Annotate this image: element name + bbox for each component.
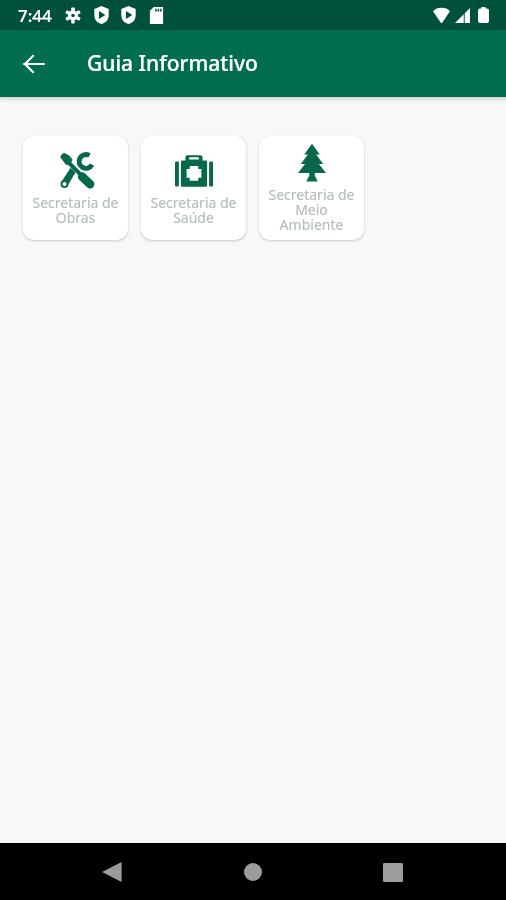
staticText: Secretaria de Meio Ambiente: [268, 185, 355, 234]
button[interactable]: Secretaria de Obras: [23, 136, 128, 240]
button[interactable]: Back: [88, 848, 136, 896]
button[interactable]: Home: [229, 848, 277, 896]
button[interactable]: Recents: [369, 848, 417, 896]
staticText: Secretaria de Saúde: [150, 193, 237, 227]
button[interactable]: Secretaria de Meio Ambiente: [259, 136, 364, 240]
button[interactable]: Secretaria de Saúde: [141, 136, 246, 240]
staticText: Secretaria de Obras: [32, 193, 119, 227]
staticText: Guia Informativo: [87, 49, 258, 78]
staticText: 7:44: [18, 4, 52, 27]
button[interactable]: Back: [12, 42, 56, 86]
